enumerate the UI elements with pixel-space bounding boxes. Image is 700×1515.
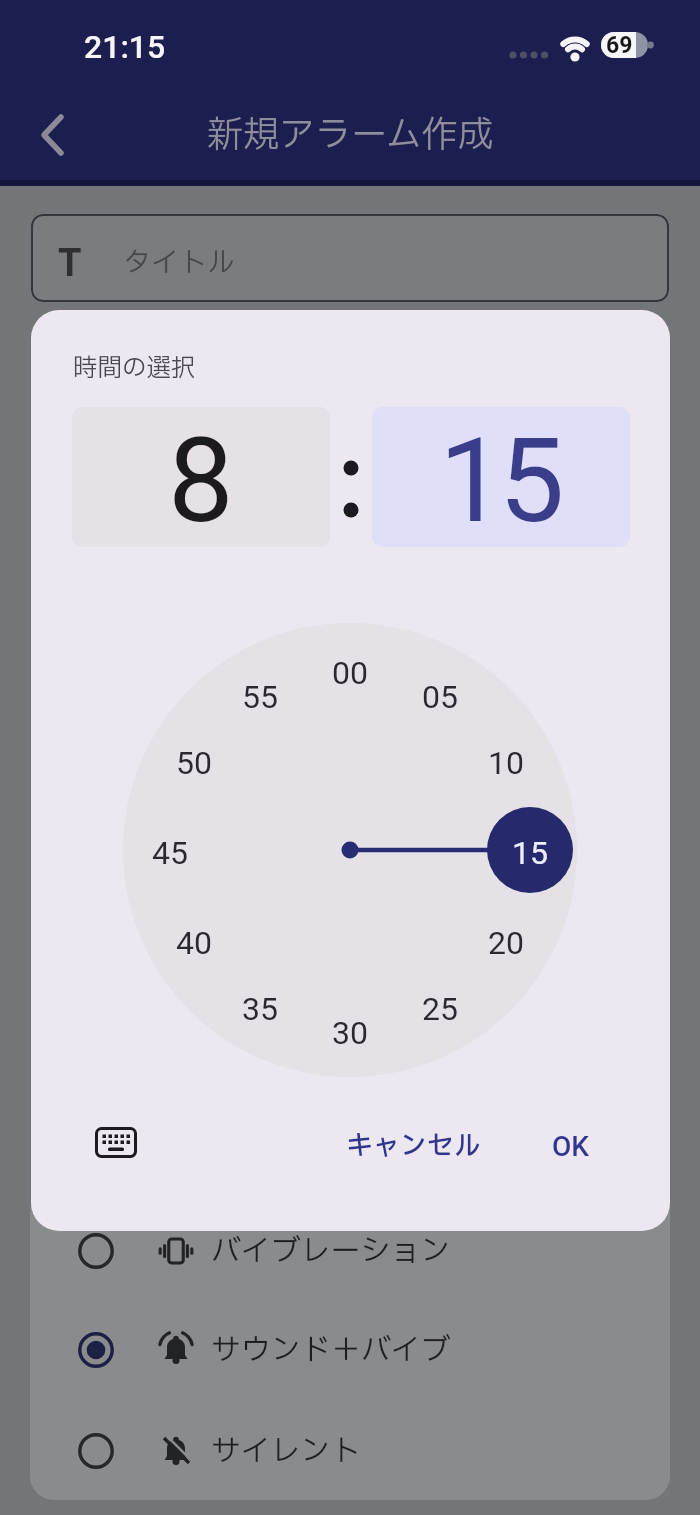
staticText: サウンド＋バイブ [211, 1328, 451, 1373]
staticText: 35 [242, 990, 278, 1028]
button[interactable]: 15 [372, 407, 630, 547]
staticText: 45 [152, 834, 188, 872]
staticText: 05 [422, 678, 458, 716]
staticText: 40 [176, 924, 212, 962]
staticText: 69 [606, 32, 633, 58]
staticText: キャンセル [346, 1126, 481, 1166]
button[interactable]: T [31, 214, 669, 302]
button[interactable]: OK [520, 1122, 620, 1170]
staticText: 00 [332, 654, 368, 692]
staticText: 55 [242, 678, 278, 716]
staticText: 10 [488, 744, 524, 782]
staticText: バイブレーション [211, 1229, 451, 1274]
button[interactable]: サイレント [48, 1416, 670, 1486]
staticText: 15 [512, 834, 548, 872]
staticText: サイレント [211, 1429, 361, 1474]
staticText: 25 [422, 990, 458, 1028]
staticText: 新規アラーム作成 [207, 109, 494, 163]
staticText: 20 [488, 924, 524, 962]
button[interactable]: サウンド＋バイブ [48, 1315, 670, 1385]
button[interactable]: 8 [72, 407, 330, 547]
staticText: 30 [332, 1014, 368, 1052]
staticText: 8 [168, 412, 234, 547]
staticText: 15 [439, 412, 559, 547]
staticText: 21:15 [84, 28, 166, 66]
button[interactable]: バイブレーション [48, 1216, 670, 1286]
button[interactable]: キャンセル [333, 1122, 493, 1170]
staticText: T [58, 241, 82, 286]
staticText: タイトル [123, 242, 236, 284]
button[interactable] [81, 1110, 151, 1174]
button[interactable] [28, 108, 80, 162]
staticText: OK [552, 1130, 589, 1163]
staticText: 時間の選択 [73, 350, 196, 387]
staticText: 50 [176, 744, 212, 782]
